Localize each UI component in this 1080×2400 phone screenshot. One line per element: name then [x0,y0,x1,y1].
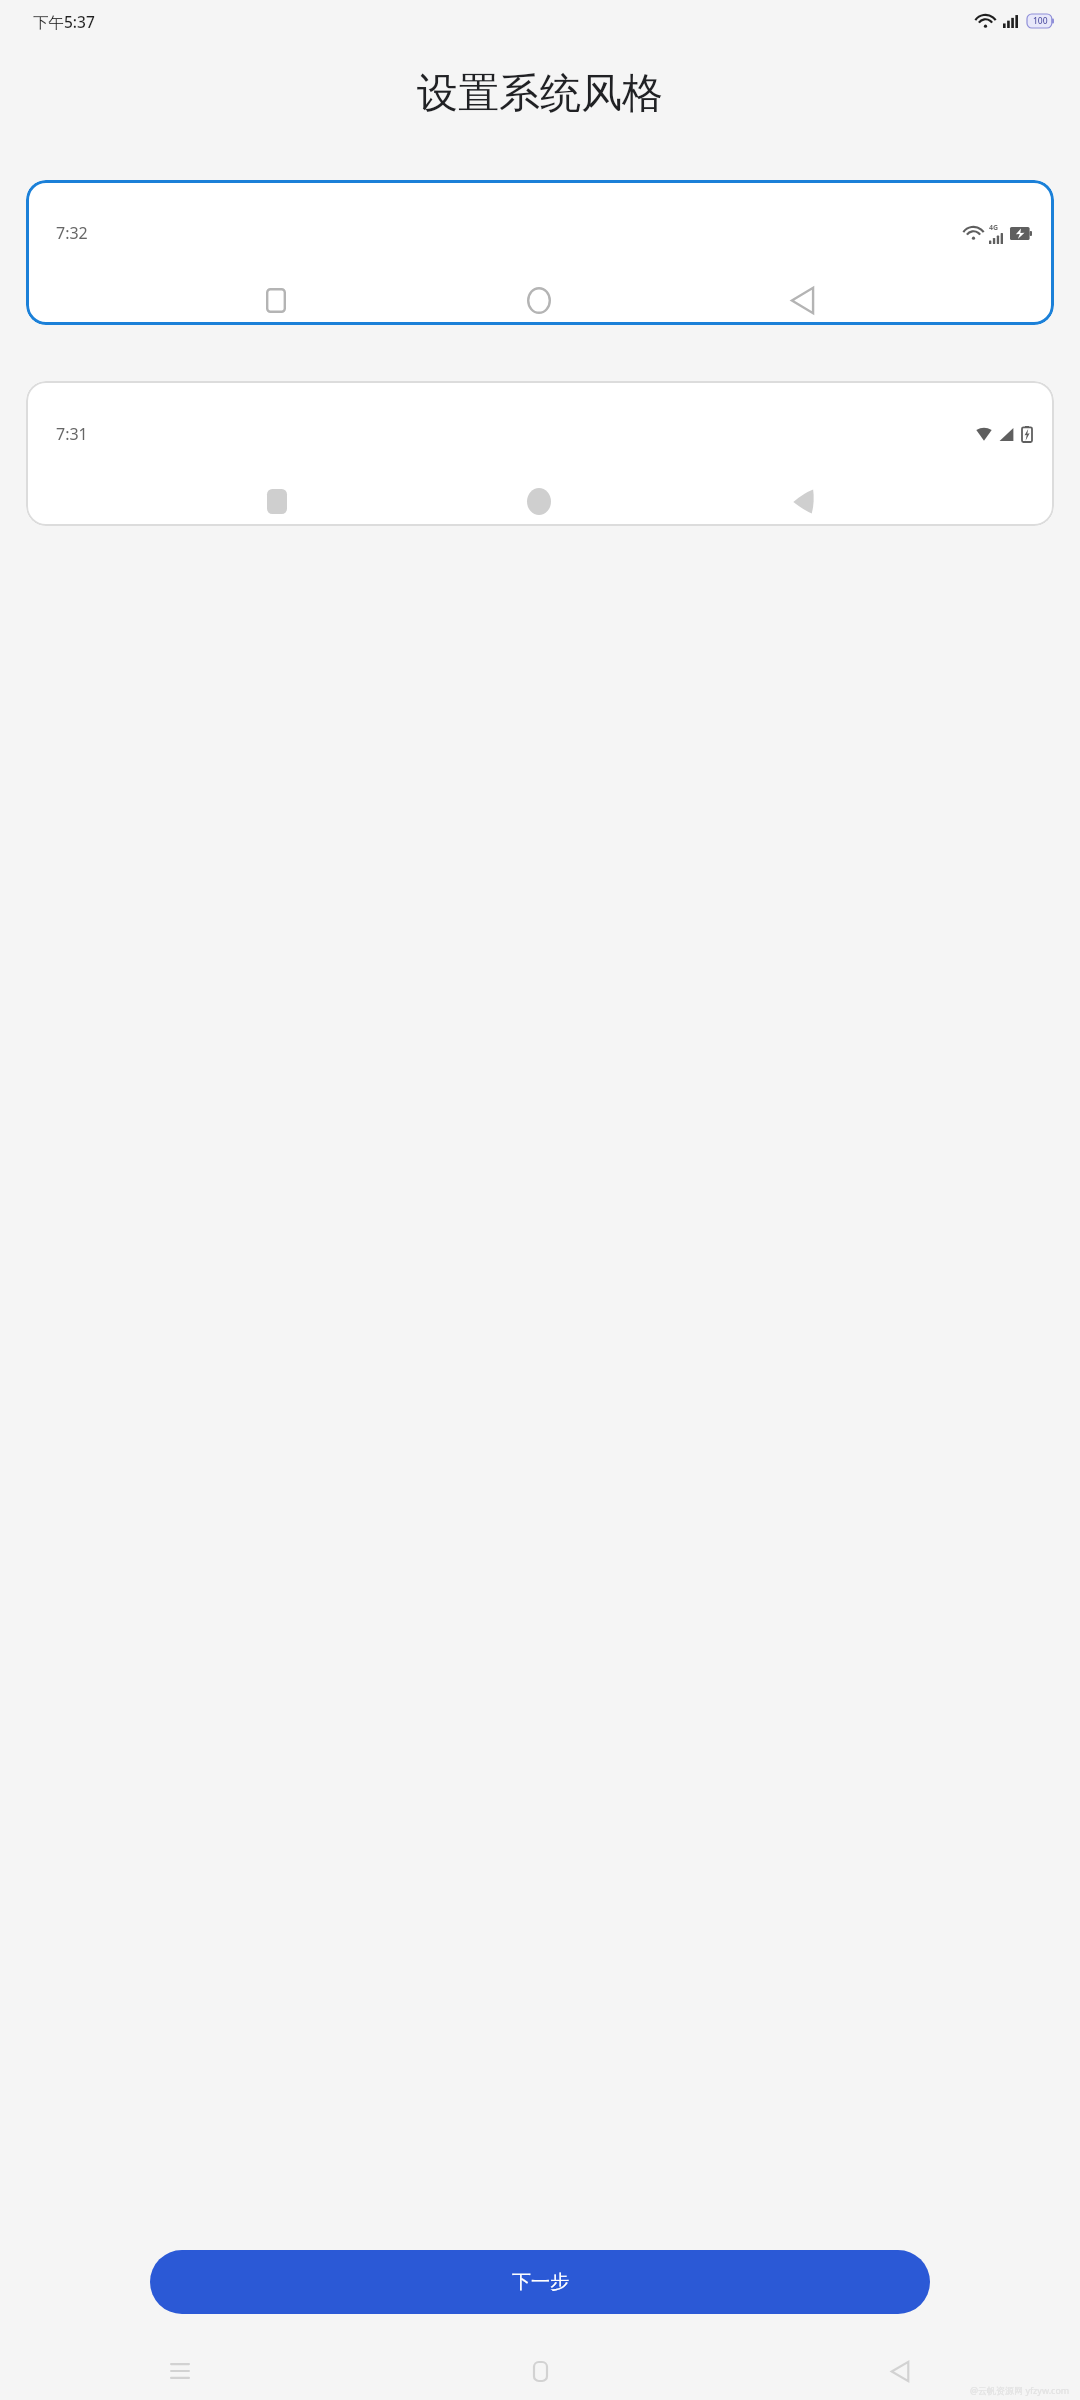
button[interactable]: Home [511,2342,569,2400]
button[interactable]: Back [871,2342,929,2400]
staticText: 下一步 [512,2270,569,2294]
staticText: 下午5:37 [33,11,95,32]
staticText: 4G [989,223,999,233]
button[interactable]: 下一步 [150,2250,930,2314]
button[interactable]: Navigation buttons style, selected [26,180,1054,325]
button[interactable]: Gesture style [26,381,1054,526]
button[interactable]: Recent apps [151,2342,209,2400]
staticText: @云帆资源网 yfzyw.com [970,2384,1070,2396]
staticText: 设置系统风格 [0,68,1080,120]
staticText: 7:31 [56,423,88,445]
staticText: 7:32 [56,222,88,244]
staticText: 100 [1033,15,1048,27]
